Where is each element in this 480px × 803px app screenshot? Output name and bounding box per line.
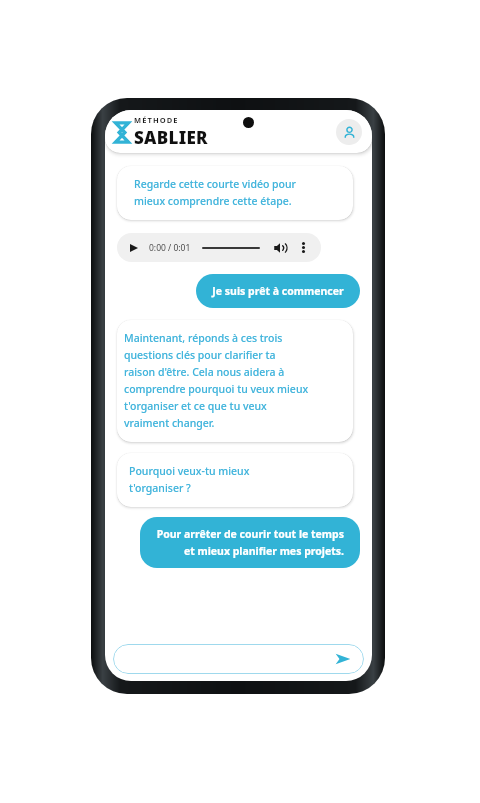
button[interactable]: Profil xyxy=(336,119,362,145)
staticText: Maintenant, réponds à ces trois xyxy=(124,331,283,345)
staticText: Pour arrêter de courir tout le temps xyxy=(156,527,344,541)
button[interactable]: Je suis prêt à commencer xyxy=(196,274,360,308)
button[interactable]: Regarde cette courte vidéo pour xyxy=(117,166,353,220)
button[interactable]: Lire xyxy=(128,242,140,254)
button[interactable]: Plus d'options xyxy=(297,241,310,254)
button[interactable]: Volume xyxy=(273,241,286,254)
staticText: t'organiser ? xyxy=(129,481,191,495)
staticText: et mieux planifier mes projets. xyxy=(183,544,344,558)
staticText: Je suis prêt à commencer xyxy=(212,284,344,298)
staticText: t'organiser et ce que tu veux xyxy=(124,399,267,413)
button[interactable]: Pourquoi veux-tu mieux xyxy=(117,453,353,507)
button[interactable]: Pour arrêter de courir tout le temps xyxy=(140,517,360,568)
staticText: vraiment changer. xyxy=(124,416,215,430)
staticText: questions clés pour clarifier ta xyxy=(124,348,276,362)
staticText: comprendre pourquoi tu veux mieux xyxy=(124,382,309,396)
button[interactable]: Maintenant, réponds à ces trois xyxy=(117,320,353,442)
button[interactable]: Lire xyxy=(117,233,321,262)
staticText: Regarde cette courte vidéo pour xyxy=(134,177,297,191)
staticText: 0:00 / 0:01 xyxy=(149,242,191,254)
staticText: Pourquoi veux-tu mieux xyxy=(129,464,250,478)
staticText: MÉTHODE xyxy=(134,115,179,125)
button[interactable]: Envoyer xyxy=(113,644,364,674)
button[interactable]: Envoyer xyxy=(333,649,353,669)
staticText: raison d'être. Cela nous aidera à xyxy=(124,365,285,379)
staticText: SABLIER xyxy=(134,126,208,149)
staticText: mieux comprendre cette étape. xyxy=(134,194,292,208)
